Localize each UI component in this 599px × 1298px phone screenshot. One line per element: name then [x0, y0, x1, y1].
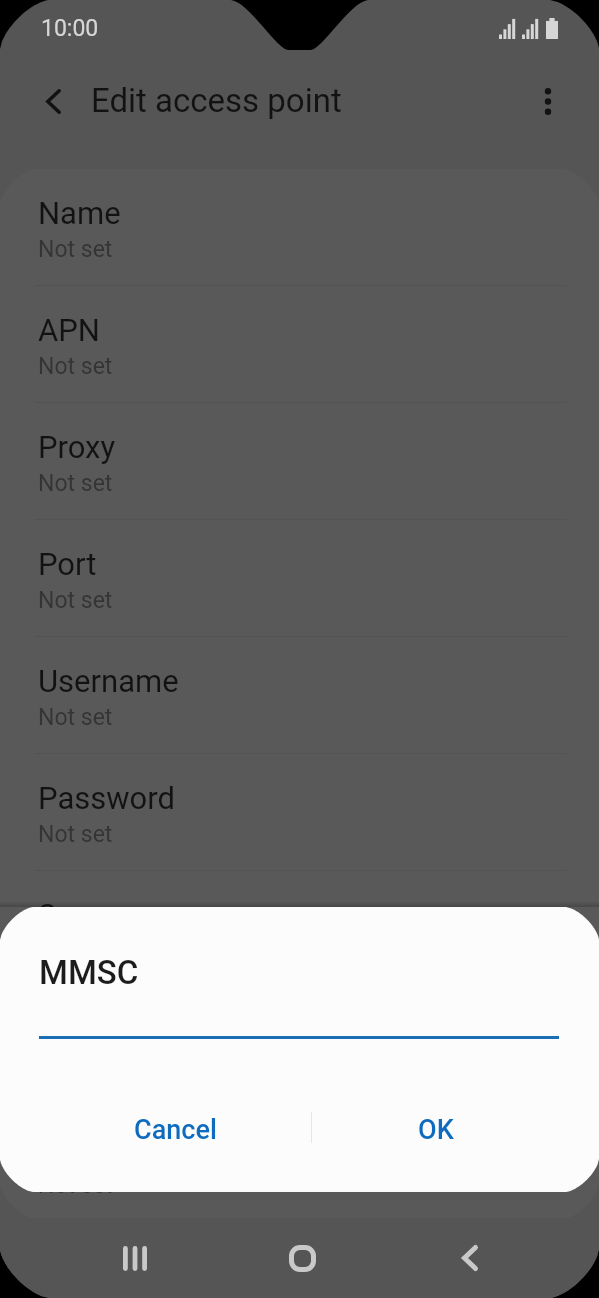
staticText: Port — [38, 546, 97, 582]
button[interactable]: Cancel — [95, 1095, 255, 1165]
button[interactable]: Home — [246, 1218, 358, 1298]
staticText: Proxy — [38, 429, 116, 465]
staticText: Name — [38, 195, 121, 231]
staticText: Not set — [38, 470, 113, 497]
button[interactable]: Back — [414, 1218, 525, 1298]
staticText: Username — [38, 663, 179, 699]
staticText: Not set — [38, 236, 113, 263]
staticText: APN — [38, 312, 100, 348]
staticText: 10:00 — [41, 15, 99, 42]
button[interactable]: APN — [0, 286, 599, 402]
button[interactable]: Port — [0, 520, 599, 636]
staticText: Server — [38, 897, 126, 933]
button[interactable]: Proxy — [0, 403, 599, 519]
staticText: Not set — [38, 587, 113, 614]
staticText: MMS proxy — [38, 1131, 194, 1167]
staticText: Not set — [38, 704, 113, 731]
button[interactable]: MMSC — [0, 988, 599, 1104]
staticText: OK — [418, 1114, 454, 1146]
button[interactable]: Server — [0, 871, 599, 987]
staticText: Password — [38, 780, 175, 816]
staticText: Not set — [38, 1172, 113, 1199]
staticText: Not set — [38, 938, 113, 965]
staticText: Not set — [38, 821, 113, 848]
button[interactable]: MMS proxy — [0, 1105, 599, 1219]
staticText: Edit access point — [91, 81, 342, 120]
button[interactable]: Navigate up — [26, 74, 80, 128]
button[interactable]: Password — [0, 754, 599, 870]
staticText: Not set — [38, 353, 113, 380]
button[interactable]: Recent apps — [79, 1218, 190, 1298]
button[interactable]: More options — [521, 74, 575, 128]
staticText: MMSC — [38, 1014, 131, 1050]
button[interactable]: Name — [0, 169, 599, 285]
button[interactable]: Username — [0, 637, 599, 753]
staticText: Cancel — [134, 1114, 217, 1146]
button[interactable]: OK — [356, 1095, 516, 1165]
staticText: MMSC — [39, 953, 139, 992]
